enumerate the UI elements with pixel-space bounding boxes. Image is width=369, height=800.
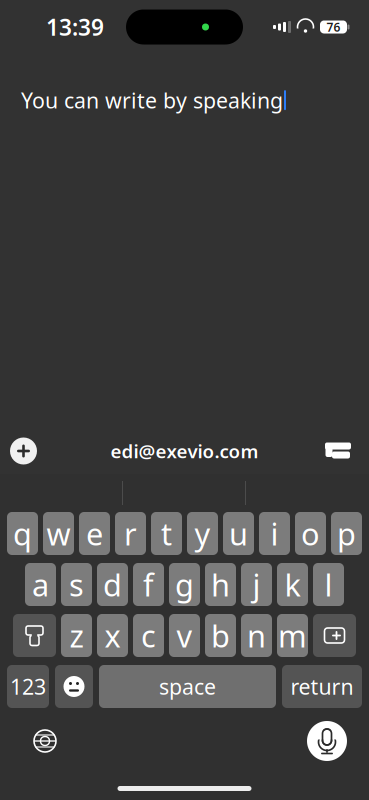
staticText: a: [32, 564, 49, 605]
button[interactable]: Add attachment: [10, 437, 37, 464]
staticText: edi@exevio.com: [110, 439, 258, 463]
staticText: k: [284, 564, 300, 605]
button[interactable]: y: [187, 512, 218, 555]
button[interactable]: r: [115, 512, 146, 555]
staticText: You can write by speaking: [21, 86, 283, 114]
button[interactable]: l: [313, 563, 344, 606]
staticText: space: [159, 672, 216, 701]
staticText: f: [143, 564, 154, 605]
button[interactable]: d: [97, 563, 128, 606]
button[interactable]: v: [169, 614, 200, 657]
button[interactable]: o: [295, 512, 326, 555]
staticText: u: [229, 513, 248, 554]
button[interactable]: w: [43, 512, 74, 555]
button[interactable]: h: [205, 563, 236, 606]
button[interactable]: Send: [323, 437, 353, 465]
staticText: e: [86, 513, 103, 554]
button[interactable]: k: [277, 563, 308, 606]
staticText: v: [176, 615, 192, 656]
button[interactable]: i: [259, 512, 290, 555]
staticText: n: [247, 615, 266, 656]
staticText: o: [301, 513, 320, 554]
button[interactable]: Emoji: [55, 665, 93, 708]
button[interactable]: Shift: [13, 614, 56, 657]
button[interactable]: c: [133, 614, 164, 657]
staticText: return: [290, 672, 353, 701]
button[interactable]: Dictation: [307, 721, 347, 761]
staticText: p: [337, 513, 356, 554]
button[interactable]: x: [97, 614, 128, 657]
staticText: y: [194, 513, 210, 554]
button[interactable]: j: [241, 563, 272, 606]
button[interactable]: m: [277, 614, 308, 657]
staticText: b: [211, 615, 230, 656]
staticText: l: [324, 564, 332, 605]
staticText: h: [211, 564, 230, 605]
button[interactable]: space: [99, 665, 276, 708]
button[interactable]: q: [7, 512, 38, 555]
button[interactable]: return: [282, 665, 362, 708]
button[interactable]: z: [61, 614, 92, 657]
button[interactable]: p: [331, 512, 362, 555]
button[interactable]: s: [61, 563, 92, 606]
button[interactable]: e: [79, 512, 110, 555]
staticText: x: [104, 615, 120, 656]
button[interactable]: u: [223, 512, 254, 555]
staticText: s: [69, 564, 84, 605]
staticText: r: [124, 513, 137, 554]
staticText: 123: [10, 672, 46, 701]
button[interactable]: a: [25, 563, 56, 606]
staticText: g: [175, 564, 194, 605]
button[interactable]: 123: [7, 665, 49, 708]
staticText: 76: [326, 19, 340, 35]
staticText: c: [141, 615, 156, 656]
button[interactable]: g: [169, 563, 200, 606]
staticText: w: [46, 513, 70, 554]
button[interactable]: Next keyboard: [28, 724, 62, 758]
button[interactable]: t: [151, 512, 182, 555]
staticText: j: [252, 564, 260, 605]
staticText: m: [278, 615, 307, 656]
staticText: q: [13, 513, 32, 554]
staticText: i: [270, 513, 278, 554]
button[interactable]: Delete: [313, 614, 356, 657]
staticText: d: [103, 564, 122, 605]
staticText: t: [161, 513, 172, 554]
button[interactable]: f: [133, 563, 164, 606]
staticText: z: [69, 615, 83, 656]
staticText: 13:39: [46, 12, 104, 42]
button[interactable]: b: [205, 614, 236, 657]
button[interactable]: n: [241, 614, 272, 657]
